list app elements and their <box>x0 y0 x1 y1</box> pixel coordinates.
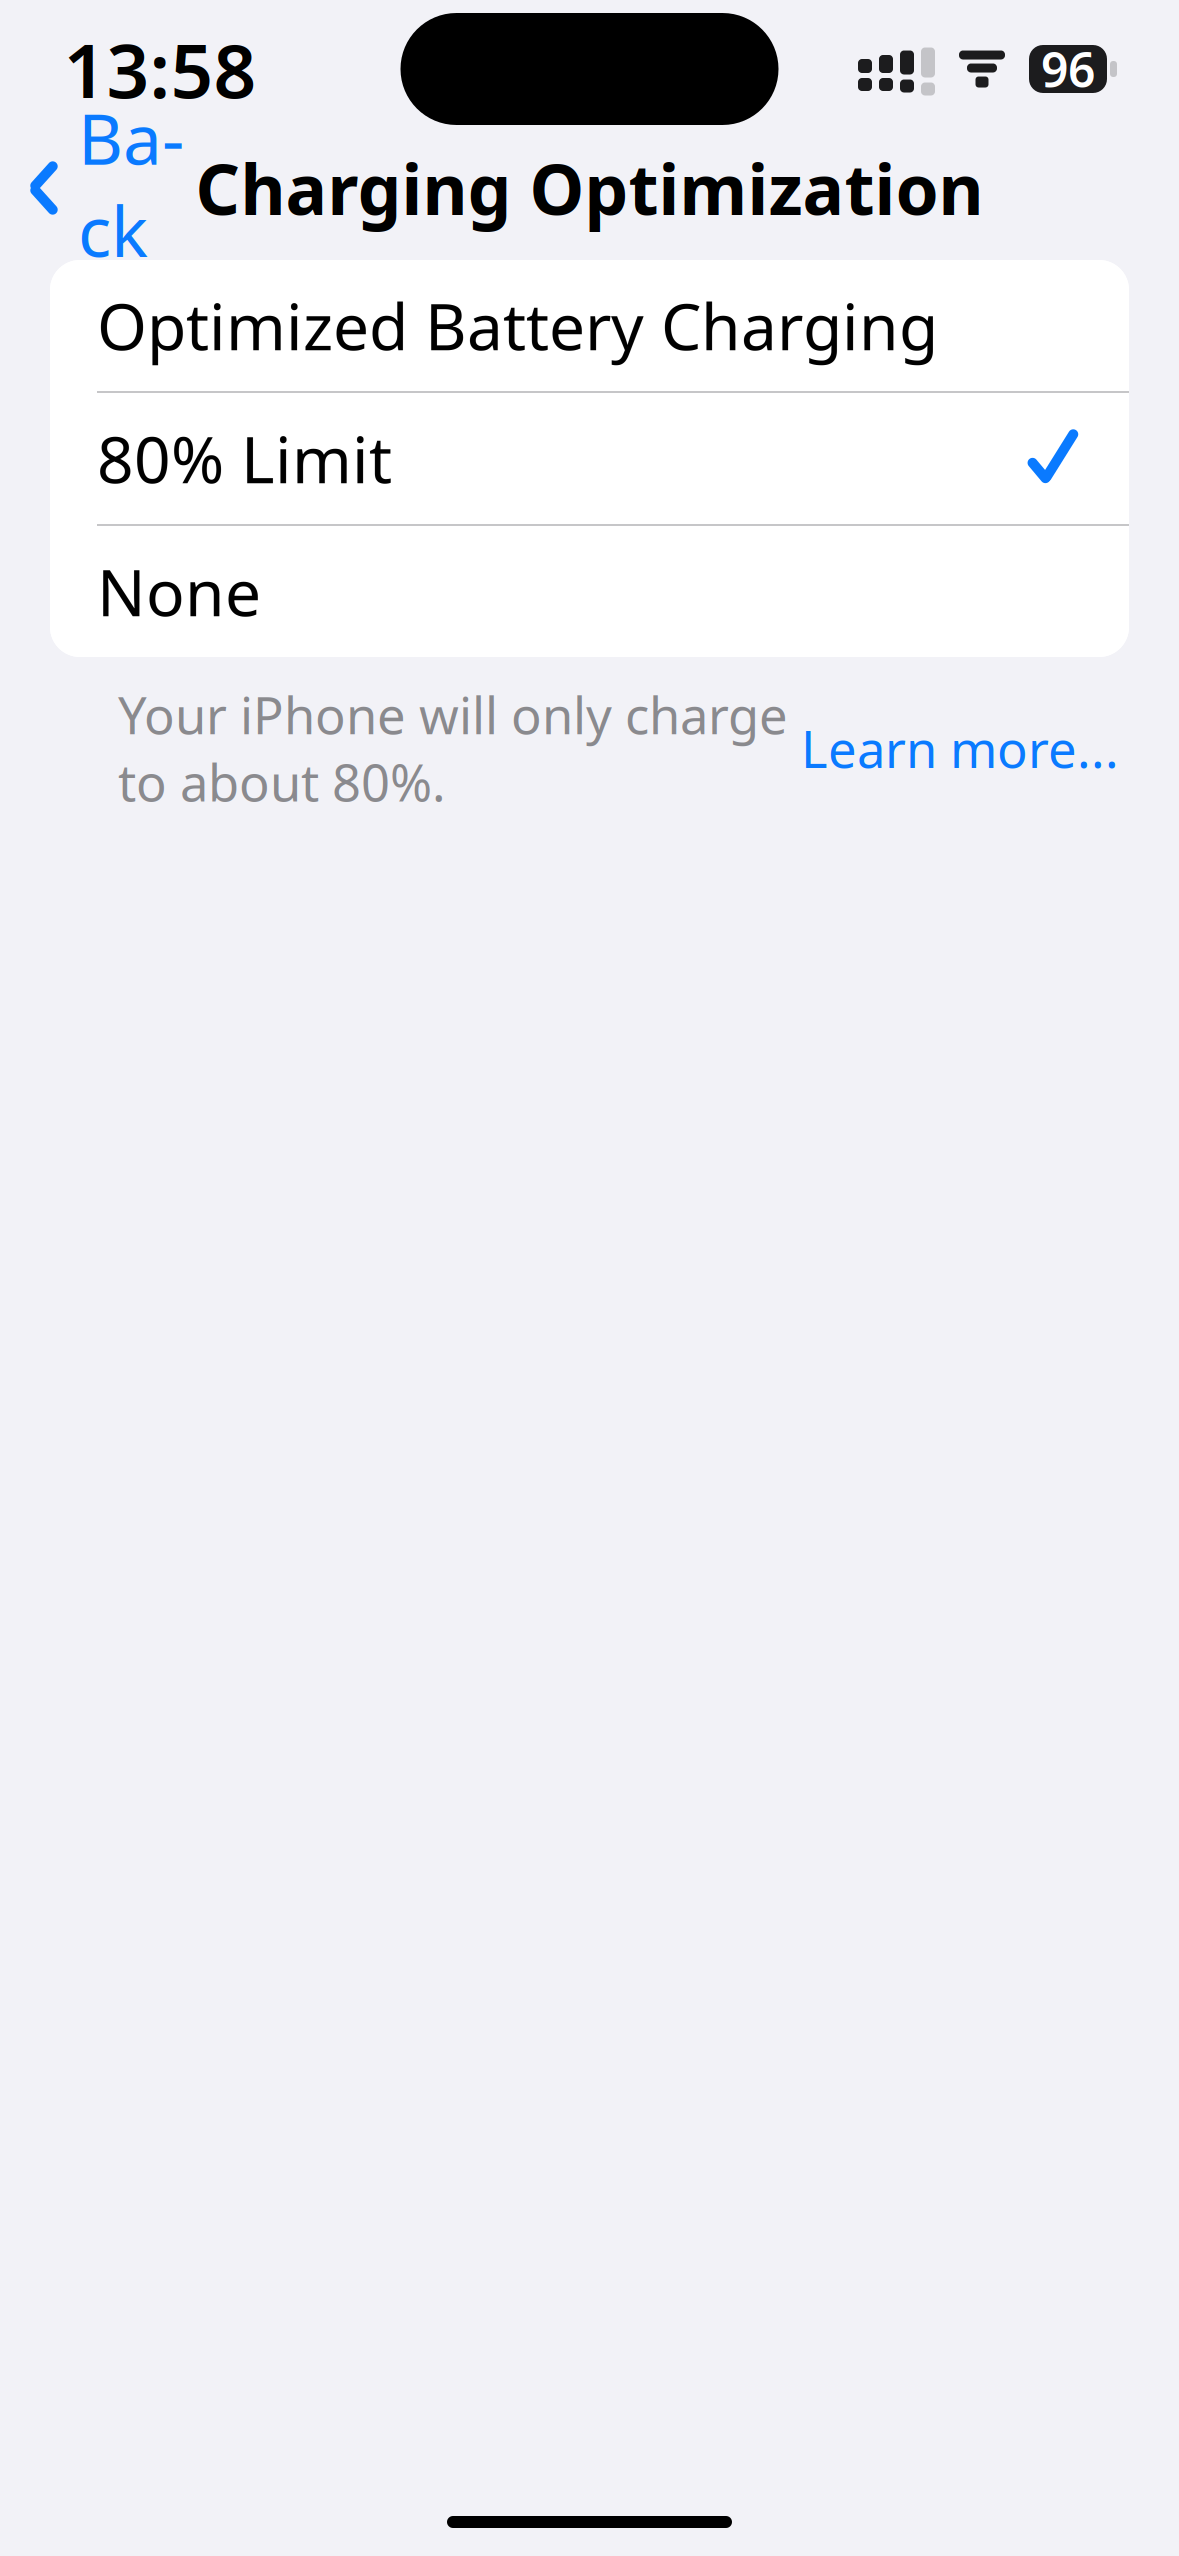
staticText: 96 <box>1041 37 1095 101</box>
staticText: Back <box>78 92 184 276</box>
button[interactable]: 80% Limit <box>50 393 1129 524</box>
staticText: 80% Limit <box>97 416 392 501</box>
button[interactable]: Back <box>0 82 190 294</box>
staticText: Charging Optimization <box>195 142 983 234</box>
staticText: Learn more... <box>788 715 1119 782</box>
staticText: None <box>97 549 261 634</box>
button[interactable]: Learn more... <box>788 715 1119 782</box>
button[interactable]: Optimized Battery Charging <box>50 260 1129 391</box>
button[interactable]: None <box>50 526 1129 657</box>
staticText: Optimized Battery Charging <box>97 283 938 368</box>
staticText: 13:58 <box>63 19 256 119</box>
staticText: Your iPhone will only charge to about 80… <box>118 681 788 816</box>
